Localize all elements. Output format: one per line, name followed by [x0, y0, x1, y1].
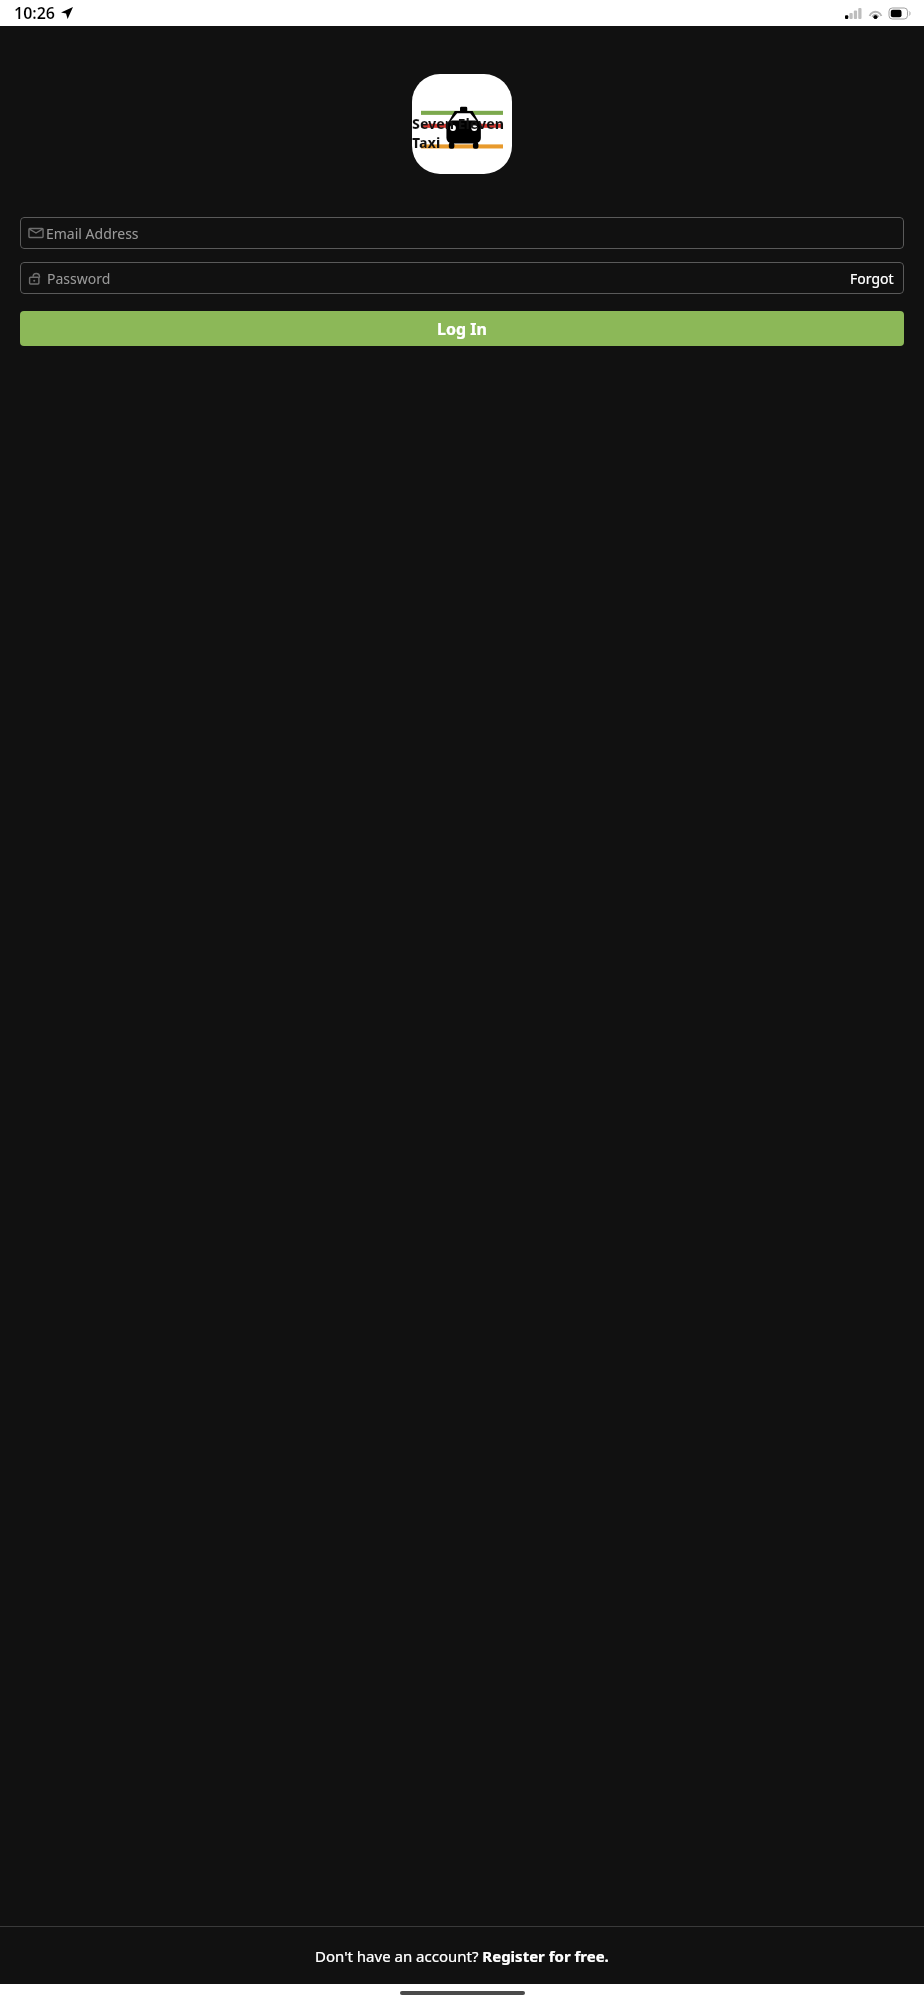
staticText: Don't have an account? Register for free… — [315, 1946, 609, 1966]
button[interactable]: Don't have an account? Register for free… — [305, 1940, 619, 1972]
staticText: Log In — [437, 318, 487, 340]
button[interactable]: Password — [20, 262, 904, 294]
button[interactable]: Email Address — [20, 217, 904, 249]
staticText: Forgot — [850, 269, 894, 288]
button[interactable]: Log In — [20, 311, 904, 346]
staticText: 10:26 — [14, 2, 56, 24]
staticText: Password — [47, 269, 111, 288]
staticText: Seven Eleven Taxi — [412, 114, 512, 152]
staticText: Email Address — [46, 224, 139, 243]
button[interactable]: Forgot — [848, 267, 896, 290]
